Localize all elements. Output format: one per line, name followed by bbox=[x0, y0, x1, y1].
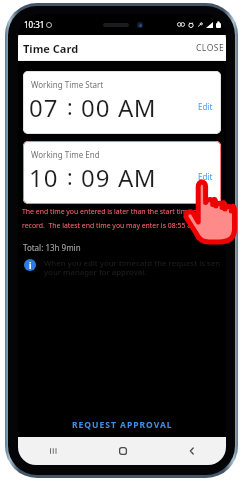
staticText: i bbox=[29, 260, 32, 271]
staticText: : bbox=[67, 93, 73, 122]
button[interactable]: Edit bbox=[190, 165, 221, 188]
button[interactable]: Back bbox=[157, 437, 226, 465]
staticText: 10:31 bbox=[24, 19, 45, 30]
staticText: Working Time End bbox=[31, 149, 100, 160]
staticText: AM bbox=[118, 91, 156, 124]
staticText: AM bbox=[118, 161, 156, 194]
staticText: 10 bbox=[29, 161, 59, 194]
staticText: REQUEST APPROVAL bbox=[72, 419, 173, 431]
staticText: Total: 13h 9min bbox=[23, 242, 81, 253]
button[interactable]: Edit bbox=[190, 95, 221, 118]
button[interactable]: Recents bbox=[18, 437, 88, 465]
staticText: Time Card bbox=[23, 41, 79, 56]
button[interactable]: CLOSE bbox=[190, 36, 226, 60]
staticText: When you edit your timecard the request … bbox=[44, 258, 220, 278]
staticText: Working Time Start bbox=[31, 79, 104, 90]
staticText: 07 bbox=[29, 91, 59, 124]
staticText: 09 bbox=[81, 161, 111, 194]
staticText: Edit bbox=[198, 101, 213, 112]
button[interactable]: Working Time End bbox=[23, 141, 221, 204]
button[interactable]: Home bbox=[88, 437, 157, 465]
staticText: : bbox=[67, 163, 73, 192]
button[interactable]: REQUEST APPROVAL bbox=[18, 413, 226, 437]
staticText: Edit bbox=[198, 171, 213, 182]
button[interactable]: Working Time Start bbox=[23, 71, 221, 134]
staticText: The end time you entered is later than t… bbox=[22, 207, 226, 230]
staticText: 00 bbox=[81, 91, 111, 124]
staticText: CLOSE bbox=[196, 42, 225, 54]
